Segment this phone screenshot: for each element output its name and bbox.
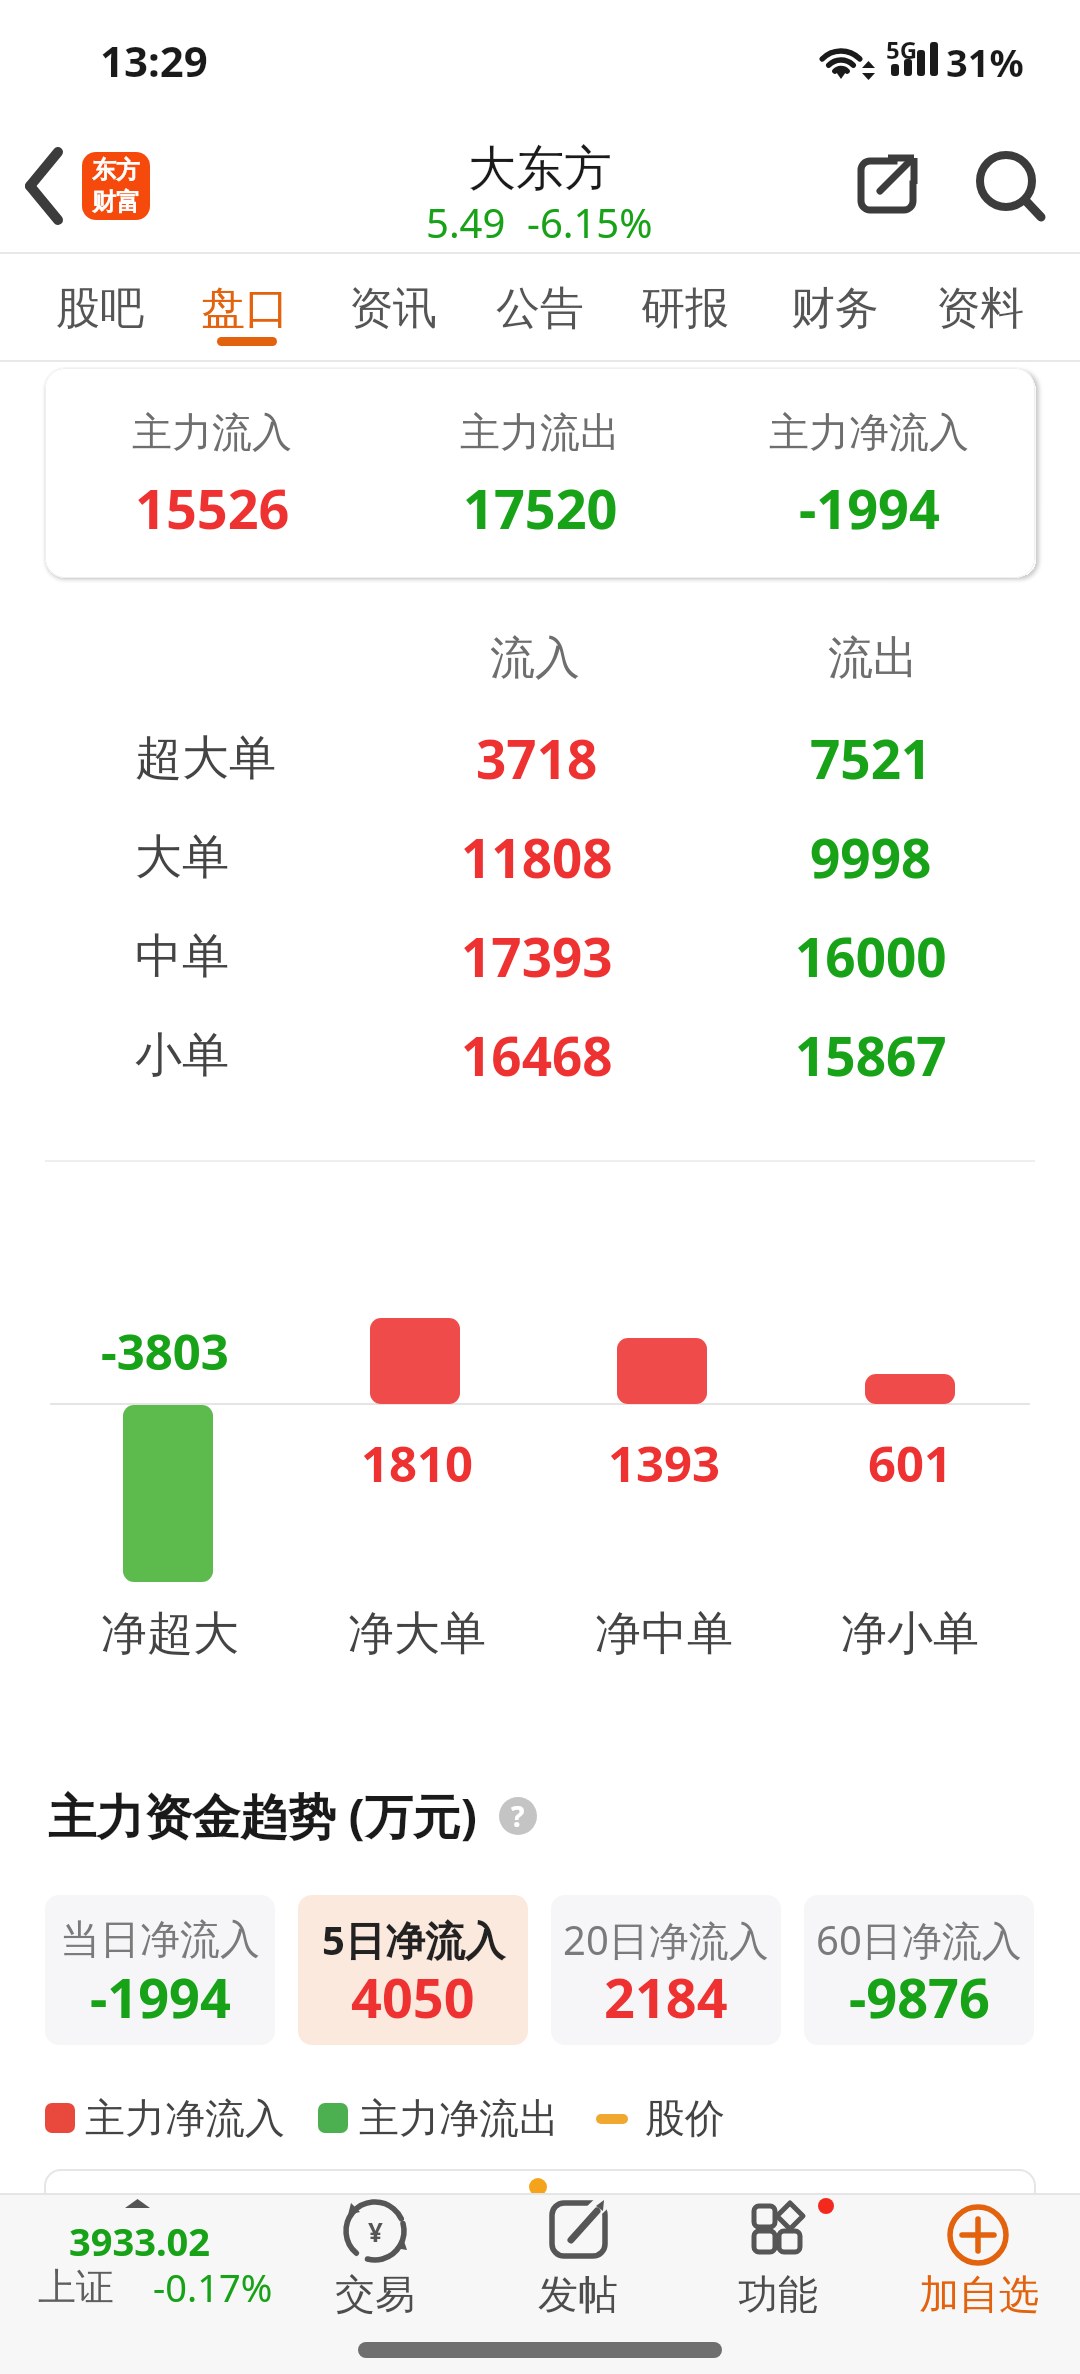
staticText: 5G	[886, 33, 918, 66]
staticText: 1810	[361, 1430, 474, 1497]
staticText: 601	[868, 1430, 953, 1497]
button[interactable]: 研报	[612, 258, 758, 358]
staticText: 11808	[461, 821, 613, 893]
button[interactable]: 财务	[762, 258, 908, 358]
staticText: 超大单	[135, 729, 276, 788]
staticText: ¥	[368, 2214, 383, 2249]
staticText: 16468	[461, 1019, 613, 1091]
button[interactable]: 资料	[907, 258, 1053, 358]
staticText: 16000	[795, 920, 947, 992]
staticText: 加自选	[919, 2269, 1039, 2319]
button[interactable]: 公告	[467, 258, 613, 358]
staticText: 小单	[135, 1026, 229, 1085]
button[interactable]	[298, 1895, 528, 2045]
staticText: 主力流入	[132, 407, 292, 457]
button[interactable]	[551, 1895, 781, 2045]
staticText: 20日净流入	[563, 1912, 769, 1967]
staticText: 研报	[641, 281, 729, 336]
staticText: 5日净流入	[322, 1912, 505, 1967]
staticText: -3803	[101, 1318, 229, 1385]
staticText: 主力净流出	[359, 2093, 559, 2143]
button[interactable]	[968, 143, 1052, 227]
staticText: 主力净流入	[85, 2093, 285, 2143]
staticText: -1994	[90, 1960, 231, 2034]
staticText: 5.49	[426, 195, 506, 249]
button[interactable]: 资讯	[320, 258, 466, 358]
staticText: 主力资金趋势 (万元)	[48, 1783, 478, 1849]
staticText: 17393	[461, 920, 613, 992]
staticText: 2184	[604, 1960, 728, 2034]
staticText: 功能	[738, 2269, 818, 2319]
button[interactable]: 盘口	[172, 258, 318, 358]
button[interactable]	[845, 143, 929, 227]
button[interactable]	[30, 2200, 280, 2330]
staticText: 净超大	[101, 1605, 239, 1663]
staticText: 净小单	[841, 1605, 979, 1663]
staticText: 流出	[828, 630, 918, 687]
button[interactable]	[14, 140, 84, 232]
staticText: 1393	[608, 1430, 721, 1497]
button[interactable]	[804, 1895, 1034, 2045]
staticText: 财务	[791, 281, 879, 336]
staticText: 主力净流入	[769, 407, 969, 457]
staticText: 3933.02	[69, 2215, 211, 2267]
staticText: -9876	[849, 1960, 990, 2034]
staticText: 资讯	[349, 281, 437, 336]
button[interactable]	[495, 1793, 543, 1841]
staticText: 60日净流入	[816, 1912, 1022, 1967]
staticText: 流入	[490, 630, 580, 687]
staticText: -6.15%	[527, 195, 653, 249]
staticText: 9998	[810, 821, 932, 893]
staticText: 4050	[351, 1960, 475, 2034]
staticText: 大东方	[468, 139, 612, 199]
staticText: 15526	[135, 471, 290, 545]
staticText: 主力流出	[460, 407, 620, 457]
staticText: 交易	[335, 2269, 415, 2319]
button[interactable]	[45, 1895, 275, 2045]
staticText: 发帖	[538, 2269, 618, 2319]
button[interactable]	[310, 2196, 440, 2326]
staticText: 公告	[496, 281, 584, 336]
staticText: -1994	[799, 471, 940, 545]
staticText: 当日净流入	[60, 1914, 260, 1964]
staticText: 3718	[476, 722, 598, 794]
button[interactable]	[913, 2196, 1043, 2326]
staticText: ?	[511, 1797, 525, 1835]
staticText: 大单	[135, 828, 229, 887]
staticText: 7521	[810, 722, 932, 794]
staticText: 17520	[463, 471, 618, 545]
button[interactable]: 股吧	[27, 258, 173, 358]
staticText: 15867	[795, 1019, 947, 1091]
button[interactable]	[712, 2196, 842, 2326]
staticText: 盘口	[201, 281, 289, 336]
staticText: 上证	[38, 2263, 114, 2311]
staticText: 财富	[92, 187, 140, 217]
staticText: 股吧	[56, 281, 144, 336]
staticText: 资料	[936, 281, 1024, 336]
staticText: 东方	[92, 155, 140, 185]
staticText: 中单	[135, 927, 229, 986]
staticText: 净中单	[595, 1605, 733, 1663]
staticText: -0.17%	[153, 2261, 273, 2313]
staticText: 净大单	[348, 1605, 486, 1663]
button[interactable]	[513, 2196, 643, 2326]
staticText: 31%	[946, 36, 1024, 88]
staticText: 13:29	[100, 32, 208, 89]
staticText: 股价	[645, 2093, 725, 2143]
